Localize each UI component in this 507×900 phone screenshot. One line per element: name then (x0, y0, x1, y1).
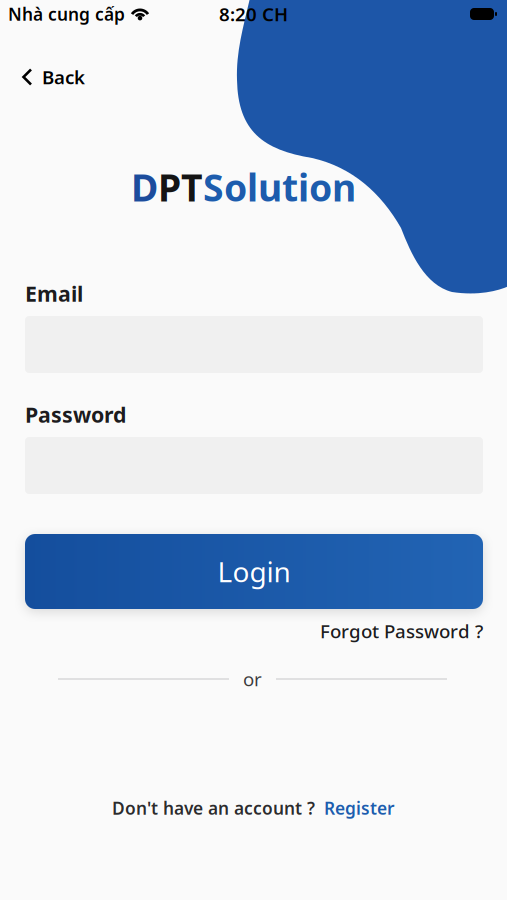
staticText: PT (158, 162, 203, 212)
staticText: Back (42, 65, 85, 89)
staticText: Don't have an account ? (112, 796, 315, 819)
button[interactable]: Register (324, 796, 395, 819)
staticText: or (243, 667, 262, 691)
staticText: Nhà cung cấp (8, 2, 125, 25)
staticText: D (131, 162, 158, 212)
staticText: Forgot Password ? (320, 619, 483, 643)
button[interactable]: Login (0, 534, 507, 609)
staticText: 8:20 CH (219, 2, 288, 26)
staticText: Password (25, 400, 126, 429)
button[interactable]: Forgot Password ? (320, 619, 483, 643)
staticText: Login (217, 553, 290, 590)
staticText: Register (324, 796, 395, 819)
staticText: Email (25, 279, 83, 308)
staticText: Solution (203, 162, 356, 212)
button[interactable]: Back (0, 65, 85, 89)
